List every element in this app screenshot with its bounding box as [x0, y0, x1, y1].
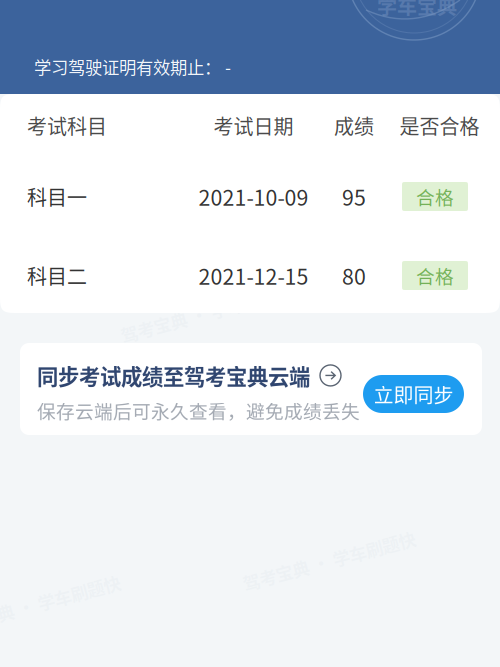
- staticText: 科目一: [27, 182, 87, 211]
- staticText: 2021-12-15: [198, 260, 308, 291]
- staticText: 考试科目: [27, 111, 107, 140]
- staticText: 保存云端后可永久查看，避免成绩丢失: [37, 397, 360, 424]
- staticText: 立即同步: [373, 379, 453, 408]
- staticText: 合格: [416, 183, 454, 210]
- staticText: 95: [342, 181, 366, 212]
- staticText: 科目二: [27, 261, 87, 290]
- staticText: 是否合格: [399, 111, 479, 140]
- staticText: 同步考试成绩至驾考宝典云端: [37, 360, 310, 391]
- staticText: 2021-10-09: [198, 181, 308, 212]
- staticText: 考试日期: [213, 111, 293, 140]
- staticText: 学习驾驶证明有效期止： -: [34, 54, 231, 79]
- button[interactable]: 同步考试成绩至驾考宝典云端: [20, 343, 482, 435]
- staticText: 合格: [416, 262, 454, 289]
- staticText: 驾考宝典 · 学车刷题快: [118, 300, 296, 325]
- staticText: 成绩: [334, 111, 374, 140]
- staticText: 80: [342, 260, 366, 291]
- staticText: 学车宝典: [377, 0, 457, 20]
